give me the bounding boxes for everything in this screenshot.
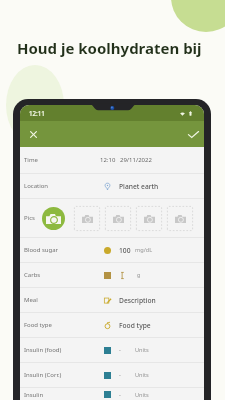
staticText: Time xyxy=(24,156,38,164)
staticText: Pics xyxy=(24,214,35,222)
staticText: 100 xyxy=(119,246,131,255)
button[interactable]: Time xyxy=(20,147,204,173)
staticText: Insulin (Corr.) xyxy=(24,371,62,379)
button[interactable]: Insulin (Corr.) xyxy=(20,363,204,387)
staticText: Insulin xyxy=(24,391,44,399)
button[interactable]: Carbs xyxy=(20,263,204,287)
button[interactable]: Location xyxy=(20,174,204,198)
staticText: Units xyxy=(135,371,149,379)
button[interactable]: Insulin (food) xyxy=(20,338,204,362)
staticText: Meal xyxy=(24,296,38,304)
staticText: mg/dL xyxy=(135,246,153,254)
staticText: Planet earth xyxy=(119,182,159,191)
button[interactable]: Close xyxy=(25,126,41,142)
staticText: 29/11/2022 xyxy=(120,156,152,164)
staticText: Food type xyxy=(24,321,52,329)
staticText: 12:11 xyxy=(29,109,45,117)
staticText: Carbs xyxy=(24,271,41,279)
button[interactable]: Meal xyxy=(20,288,204,312)
staticText: Location xyxy=(24,182,49,190)
button[interactable]: Add picture xyxy=(167,206,193,231)
staticText: - xyxy=(119,371,121,379)
staticText: Description xyxy=(119,296,156,305)
button[interactable]: Food type xyxy=(20,313,204,337)
staticText: Food type xyxy=(119,321,151,330)
staticText: Blood sugar xyxy=(24,246,59,254)
button[interactable]: Save xyxy=(185,126,201,142)
staticText: Houd je koolhydraten bij xyxy=(17,38,202,58)
staticText: Units xyxy=(135,391,149,399)
staticText: g xyxy=(137,271,141,279)
staticText: Insulin (food) xyxy=(24,346,62,354)
button[interactable]: Add picture xyxy=(74,206,100,231)
button[interactable]: Blood sugar xyxy=(20,238,204,262)
button[interactable]: Insulin xyxy=(20,388,204,400)
button[interactable]: Add picture xyxy=(136,206,162,231)
staticText: 12:10 xyxy=(100,156,116,164)
button[interactable]: Take picture xyxy=(42,207,65,230)
staticText: - xyxy=(119,346,121,354)
button[interactable]: Add picture xyxy=(105,206,131,231)
staticText: - xyxy=(119,391,121,399)
staticText: Units xyxy=(135,346,149,354)
